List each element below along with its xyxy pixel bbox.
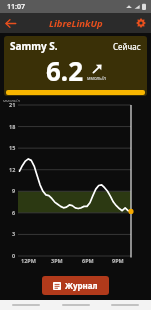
staticText: 18	[9, 123, 16, 130]
staticText: 3PM	[51, 257, 63, 264]
staticText: 6	[12, 209, 16, 216]
button[interactable]: Журнал	[42, 276, 109, 295]
button[interactable]: Back	[0, 13, 20, 33]
staticText: 21	[9, 101, 16, 108]
button[interactable]: Sammy S.	[4, 36, 147, 96]
staticText: 6.2	[46, 53, 84, 88]
staticText: 12PM	[21, 257, 36, 264]
staticText: 6PM	[82, 257, 94, 264]
staticText: 9PM	[112, 257, 124, 264]
staticText: 11:07	[7, 2, 25, 12]
staticText: ммоль/л	[3, 98, 20, 103]
staticText: ммоль/л	[87, 75, 106, 81]
staticText: 15	[9, 144, 16, 151]
staticText: Sammy S.	[10, 39, 58, 53]
staticText: 0	[12, 252, 16, 259]
button[interactable]: Settings	[131, 13, 151, 33]
staticText: 9	[12, 187, 16, 194]
staticText: Сейчас	[113, 41, 141, 52]
staticText: 3	[12, 230, 16, 237]
staticText: LibreLinkUp	[49, 17, 103, 30]
staticText: 12	[9, 166, 16, 173]
staticText: Журнал	[65, 280, 98, 291]
